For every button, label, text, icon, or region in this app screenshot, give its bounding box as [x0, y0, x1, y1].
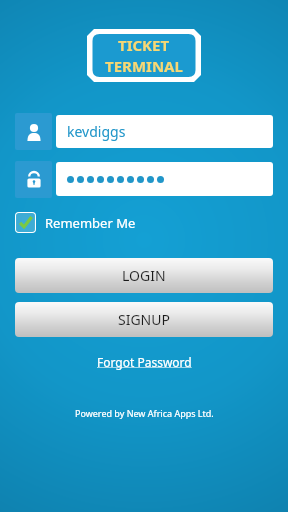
staticText: TICKET	[118, 35, 170, 55]
staticText: Forgot Password	[97, 354, 192, 370]
button[interactable]: SIGNUP	[15, 302, 273, 337]
button[interactable]: Username	[15, 113, 273, 150]
staticText: TERMINAL	[105, 56, 183, 76]
other: Username	[15, 113, 52, 150]
staticText: LOGIN	[122, 266, 166, 285]
staticText: SIGNUP	[118, 310, 170, 329]
staticText: Powered by New Africa Apps Ltd.	[75, 407, 214, 419]
staticText: Remember Me	[45, 214, 136, 232]
button[interactable]: Forgot Password	[91, 351, 198, 373]
button[interactable]: Remember Me	[15, 212, 136, 233]
staticText: kevdiggs	[67, 122, 126, 141]
button[interactable]: LOGIN	[15, 258, 273, 293]
button[interactable]: Password	[15, 160, 273, 198]
other: Password	[15, 161, 52, 198]
